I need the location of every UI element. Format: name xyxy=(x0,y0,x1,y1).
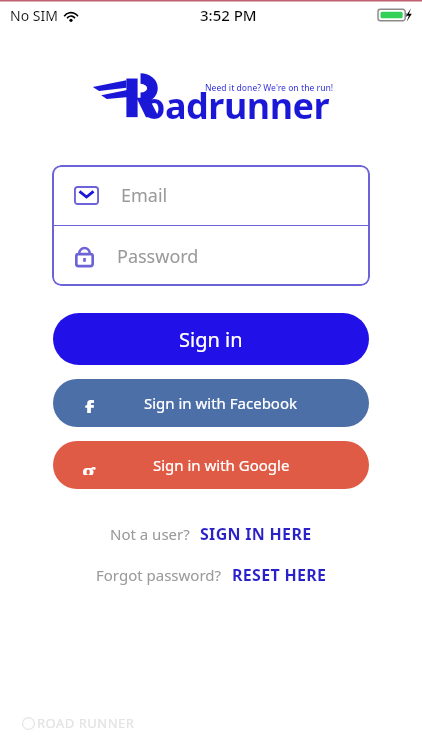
button[interactable]: Email xyxy=(52,165,370,225)
staticText: Not a user? xyxy=(110,524,190,544)
staticText: 3:52 PM xyxy=(200,5,257,25)
staticText: RESET HERE xyxy=(232,564,327,586)
staticText: SIGN IN HERE xyxy=(200,523,312,545)
button[interactable]: SIGN IN HERE xyxy=(200,523,312,545)
button[interactable]: g xyxy=(53,441,369,489)
button[interactable]: Password xyxy=(52,226,370,286)
staticText: Email xyxy=(121,183,168,208)
staticText: Password xyxy=(117,244,199,269)
staticText: ROAD RUNNER xyxy=(37,714,135,732)
button[interactable]: RESET HERE xyxy=(232,564,327,586)
staticText: g xyxy=(82,455,96,475)
button[interactable]: f xyxy=(53,379,369,427)
staticText: No SIM xyxy=(10,6,58,25)
staticText: Sign in xyxy=(179,326,243,353)
staticText: f xyxy=(85,393,94,413)
staticText: Sign in with Facebook xyxy=(144,393,298,413)
staticText: Sign in with Google xyxy=(153,455,290,475)
staticText: oadrunner xyxy=(143,81,330,130)
staticText: Need it done? We're on the run! xyxy=(205,82,334,94)
button[interactable]: Sign in xyxy=(53,313,369,365)
staticText: Forgot password? xyxy=(96,565,222,585)
